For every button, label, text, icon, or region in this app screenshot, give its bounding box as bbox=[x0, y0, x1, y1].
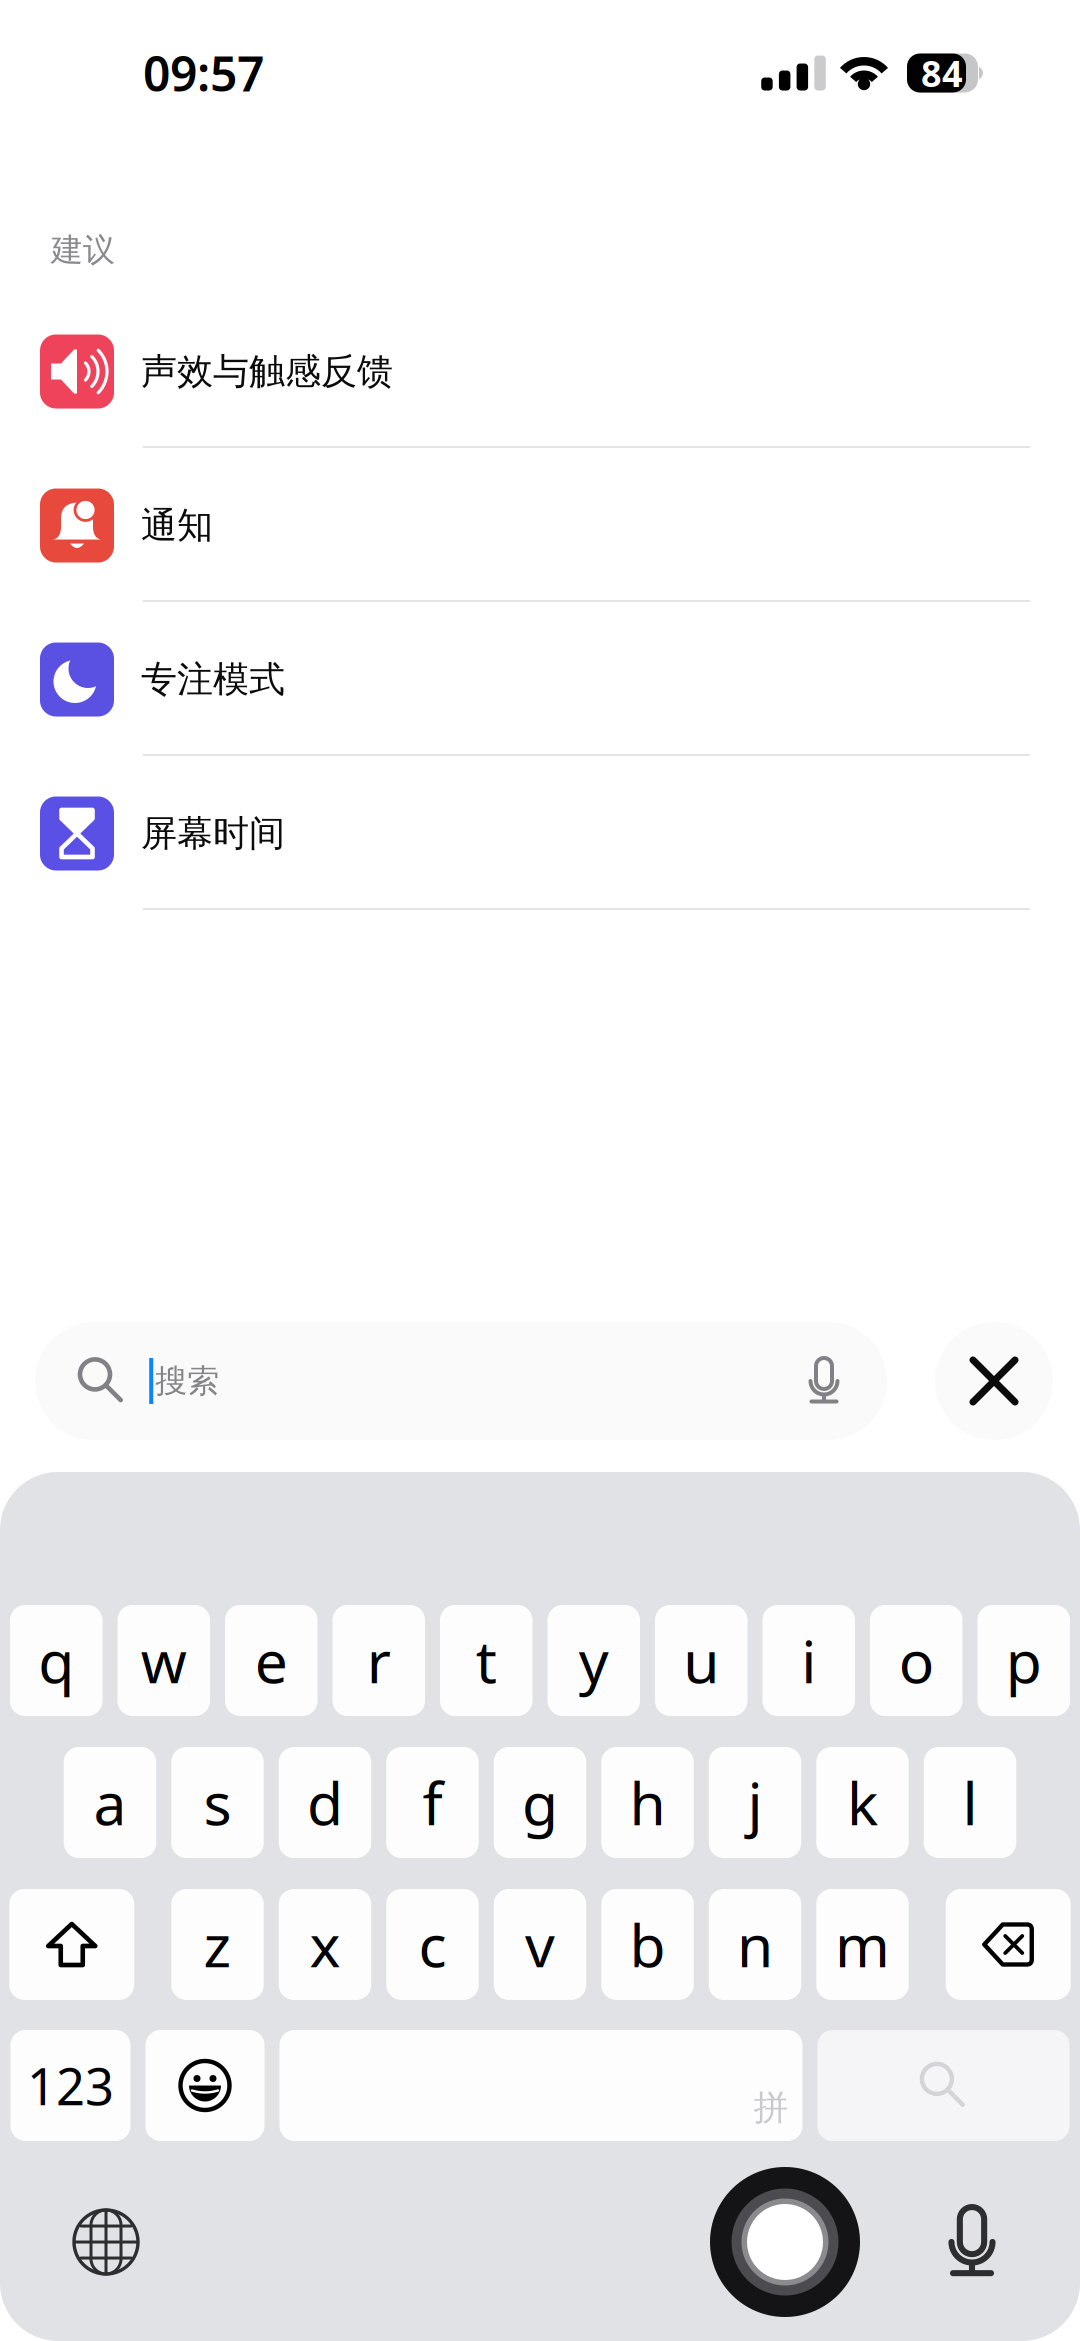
button[interactable]: 123 bbox=[10, 2030, 130, 2141]
staticText: 建议 bbox=[51, 230, 115, 270]
staticText: 通知 bbox=[141, 503, 213, 548]
button[interactable]: 空格 bbox=[279, 2030, 802, 2141]
staticText: w bbox=[141, 1621, 187, 1699]
staticText: i bbox=[801, 1621, 816, 1699]
staticText: 09:57 bbox=[143, 41, 264, 105]
staticText: l bbox=[962, 1763, 977, 1841]
staticText: h bbox=[629, 1763, 665, 1841]
staticText: d bbox=[307, 1763, 343, 1841]
button[interactable]: r bbox=[332, 1605, 425, 1716]
button[interactable]: g bbox=[494, 1747, 586, 1858]
button[interactable]: l bbox=[924, 1747, 1016, 1858]
staticText: r bbox=[367, 1621, 391, 1699]
button[interactable]: 语音输入 bbox=[942, 2167, 1002, 2317]
staticText: j bbox=[747, 1763, 762, 1841]
button[interactable]: n bbox=[709, 1889, 801, 2000]
staticText: u bbox=[683, 1621, 719, 1699]
button[interactable]: w bbox=[117, 1605, 210, 1716]
button[interactable]: u bbox=[655, 1605, 747, 1716]
staticText: m bbox=[835, 1905, 890, 1983]
button[interactable]: i bbox=[762, 1605, 855, 1716]
staticText: x bbox=[309, 1905, 340, 1983]
button[interactable]: h bbox=[601, 1747, 694, 1858]
staticText: 搜索 bbox=[155, 1361, 219, 1401]
button[interactable]: 删除 bbox=[946, 1889, 1071, 2000]
button[interactable]: t bbox=[440, 1605, 532, 1716]
staticText: 专注模式 bbox=[141, 657, 285, 702]
button[interactable]: Shift bbox=[9, 1889, 134, 2000]
button[interactable]: v bbox=[494, 1889, 586, 2000]
staticText: 84 bbox=[921, 49, 963, 97]
button[interactable]: 声效与触感反馈 bbox=[0, 298, 1080, 452]
staticText: f bbox=[422, 1763, 442, 1841]
button[interactable]: o bbox=[870, 1605, 962, 1716]
staticText: v bbox=[525, 1905, 555, 1983]
staticText: g bbox=[522, 1763, 558, 1841]
staticText: e bbox=[255, 1621, 288, 1699]
button[interactable]: 搜索 bbox=[35, 1322, 887, 1440]
button[interactable]: a bbox=[64, 1747, 156, 1858]
button[interactable]: p bbox=[977, 1605, 1070, 1716]
staticText: 声效与触感反馈 bbox=[141, 349, 393, 394]
button[interactable]: q bbox=[10, 1605, 102, 1716]
staticText: k bbox=[847, 1763, 878, 1841]
staticText: y bbox=[579, 1621, 609, 1699]
button[interactable]: c bbox=[386, 1889, 479, 2000]
staticText: p bbox=[1006, 1621, 1042, 1699]
staticText: c bbox=[418, 1905, 446, 1983]
button[interactable]: d bbox=[279, 1747, 371, 1858]
staticText: 屏幕时间 bbox=[141, 811, 285, 856]
button[interactable]: x bbox=[279, 1889, 371, 2000]
staticText: b bbox=[629, 1905, 665, 1983]
button[interactable]: b bbox=[601, 1889, 694, 2000]
button[interactable]: 屏幕时间 bbox=[0, 760, 1080, 914]
button[interactable]: 通知 bbox=[0, 452, 1080, 606]
button[interactable]: 切换键盘 bbox=[68, 2167, 144, 2317]
staticText: o bbox=[899, 1621, 934, 1699]
button[interactable]: 表情键盘 bbox=[145, 2030, 264, 2141]
staticText: z bbox=[203, 1905, 231, 1983]
staticText: 拼 bbox=[753, 2086, 788, 2129]
staticText: t bbox=[476, 1621, 497, 1699]
button[interactable]: j bbox=[709, 1747, 801, 1858]
staticText: q bbox=[38, 1621, 74, 1699]
staticText: 123 bbox=[27, 2052, 114, 2119]
button[interactable]: 专注模式 bbox=[0, 606, 1080, 760]
button[interactable]: 听写 bbox=[710, 2167, 860, 2317]
staticText: n bbox=[737, 1905, 773, 1983]
staticText: a bbox=[93, 1763, 126, 1841]
button[interactable]: y bbox=[547, 1605, 640, 1716]
button[interactable]: e bbox=[225, 1605, 317, 1716]
button[interactable]: m bbox=[816, 1889, 909, 2000]
staticText: s bbox=[203, 1763, 231, 1841]
button[interactable]: f bbox=[386, 1747, 479, 1858]
button[interactable]: 搜索 bbox=[817, 2030, 1069, 2141]
button[interactable]: k bbox=[816, 1747, 909, 1858]
button[interactable]: 关闭搜索 bbox=[935, 1322, 1053, 1440]
button[interactable]: z bbox=[171, 1889, 264, 2000]
button[interactable]: s bbox=[171, 1747, 264, 1858]
